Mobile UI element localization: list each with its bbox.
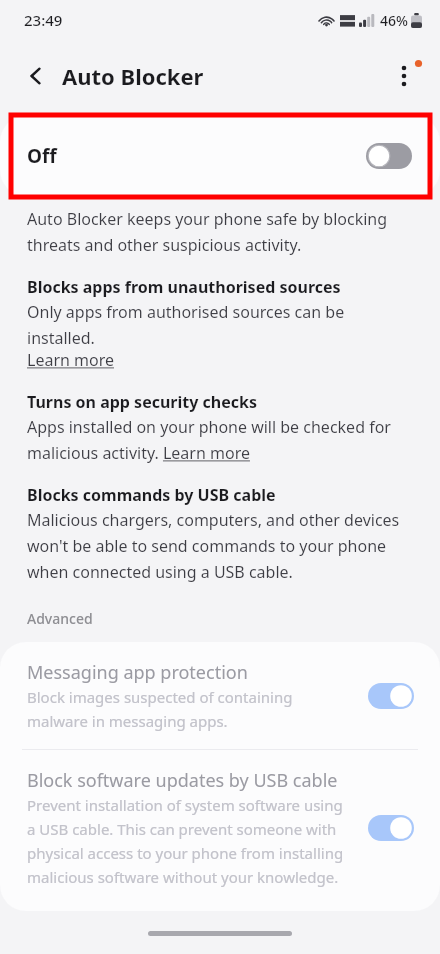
staticText: Only apps from authorised sources can be… — [27, 301, 414, 349]
button[interactable]: Back — [14, 54, 58, 98]
button[interactable]: More options — [382, 54, 426, 98]
staticText: Blocks apps from unauthorised sources — [27, 276, 341, 298]
staticText: Block images suspected of containing mal… — [27, 687, 354, 731]
staticText: Prevent installation of system software … — [27, 795, 354, 887]
button[interactable]: Learn more — [27, 349, 114, 371]
button[interactable]: Messaging app protection — [0, 642, 440, 749]
staticText: Block software updates by USB cable — [27, 768, 338, 793]
staticText: Turns on app security checks — [27, 391, 257, 413]
staticText: Learn more — [27, 349, 114, 371]
staticText: Auto Blocker — [62, 61, 204, 91]
staticText: Advanced — [27, 609, 93, 628]
button[interactable]: Block software updates by USB cable — [0, 750, 440, 911]
staticText: Apps installed on your phone will be che… — [27, 416, 414, 464]
staticText: Auto Blocker keeps your phone safe by bl… — [27, 208, 414, 256]
button[interactable]: Apps installed on your phone will be che… — [27, 416, 414, 464]
button[interactable]: Off — [0, 116, 440, 196]
staticText: 23:49 — [24, 10, 63, 30]
staticText: Off — [27, 143, 57, 169]
staticText: 46% — [380, 11, 408, 30]
staticText: Messaging app protection — [27, 660, 248, 685]
staticText: Blocks commands by USB cable — [27, 484, 276, 506]
staticText: Malicious chargers, computers, and other… — [27, 509, 414, 583]
